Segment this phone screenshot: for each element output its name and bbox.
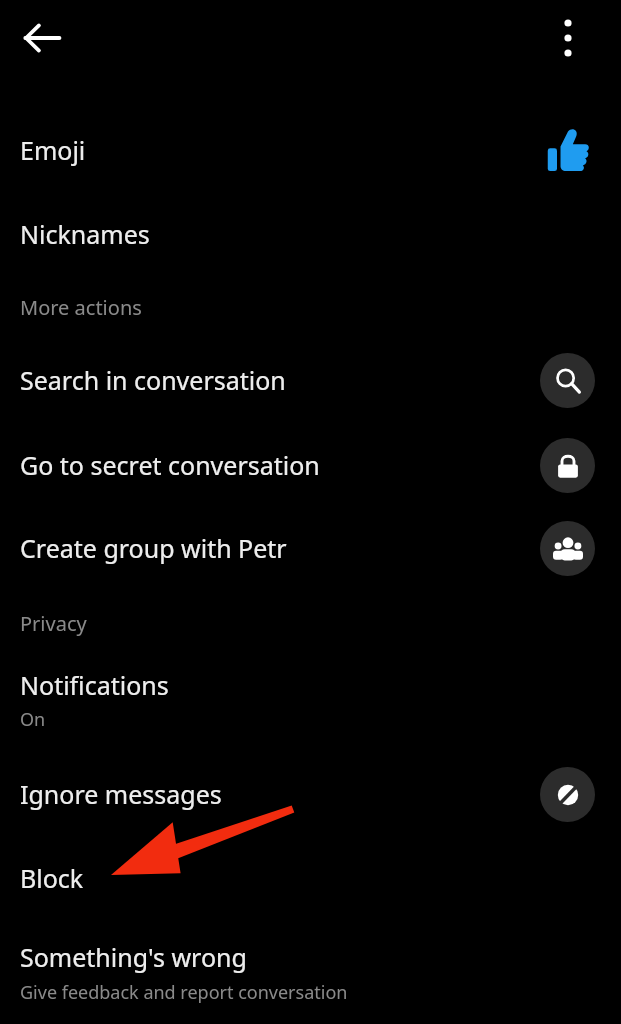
- staticText: More actions: [20, 294, 142, 321]
- button[interactable]: Search: [540, 353, 595, 408]
- staticText: Create group with Petr: [20, 531, 287, 565]
- button[interactable]: Something's wrong: [0, 924, 621, 1020]
- staticText: Nicknames: [20, 217, 150, 251]
- staticText: Give feedback and report conversation: [20, 980, 348, 1005]
- button[interactable]: Ignore messages: [0, 758, 621, 830]
- button[interactable]: Notifications: [0, 656, 621, 744]
- button[interactable]: Secret conversation: [540, 438, 595, 493]
- staticText: Privacy: [20, 610, 87, 637]
- staticText: Something's wrong: [20, 940, 247, 974]
- button[interactable]: Create group with Petr: [0, 512, 621, 584]
- button[interactable]: Go to secret conversation: [0, 429, 621, 501]
- staticText: Go to secret conversation: [20, 448, 320, 482]
- button[interactable]: Block: [0, 842, 621, 914]
- button[interactable]: Back: [14, 10, 70, 66]
- staticText: Notifications: [20, 668, 169, 702]
- staticText: Emoji: [20, 133, 86, 167]
- button[interactable]: Nicknames: [0, 198, 621, 270]
- button[interactable]: Ignore messages: [540, 767, 595, 822]
- staticText: Ignore messages: [20, 777, 222, 811]
- button[interactable]: Emoji: [0, 112, 621, 188]
- button[interactable]: Create group: [540, 521, 595, 576]
- staticText: Block: [20, 861, 84, 895]
- staticText: Search in conversation: [20, 363, 286, 397]
- staticText: On: [20, 707, 46, 732]
- button[interactable]: Search in conversation: [0, 344, 621, 416]
- button[interactable]: More options: [540, 10, 596, 66]
